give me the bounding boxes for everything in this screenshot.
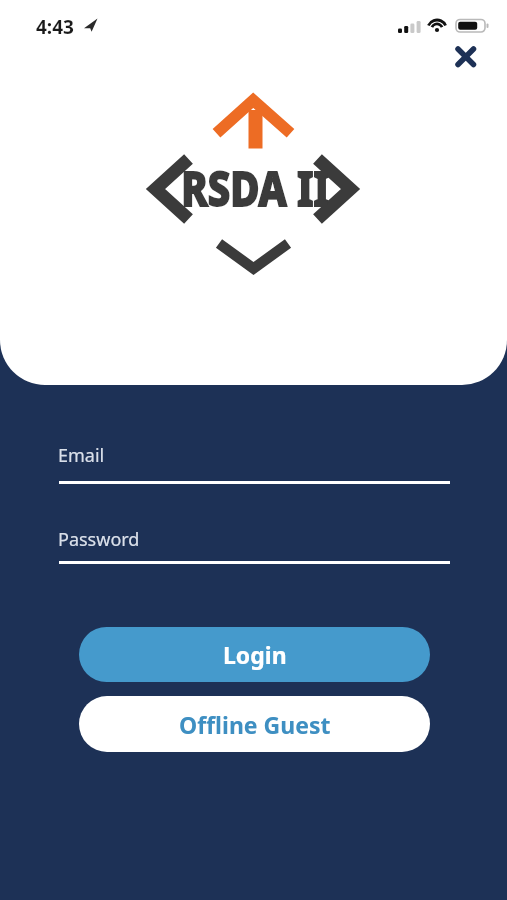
button[interactable]: Login <box>79 627 430 682</box>
staticText: Login <box>223 639 287 670</box>
staticText: Password <box>58 527 140 552</box>
staticText: 4:43 <box>36 14 74 40</box>
staticText: Email <box>58 443 105 468</box>
button[interactable]: Email <box>58 438 451 486</box>
button[interactable]: Password <box>58 522 451 566</box>
staticText: Offline Guest <box>179 709 331 740</box>
staticText: RSDA II <box>181 155 331 220</box>
staticText: RSDA II <box>181 155 331 220</box>
button[interactable] <box>447 38 487 78</box>
button[interactable]: Offline Guest <box>79 696 430 752</box>
